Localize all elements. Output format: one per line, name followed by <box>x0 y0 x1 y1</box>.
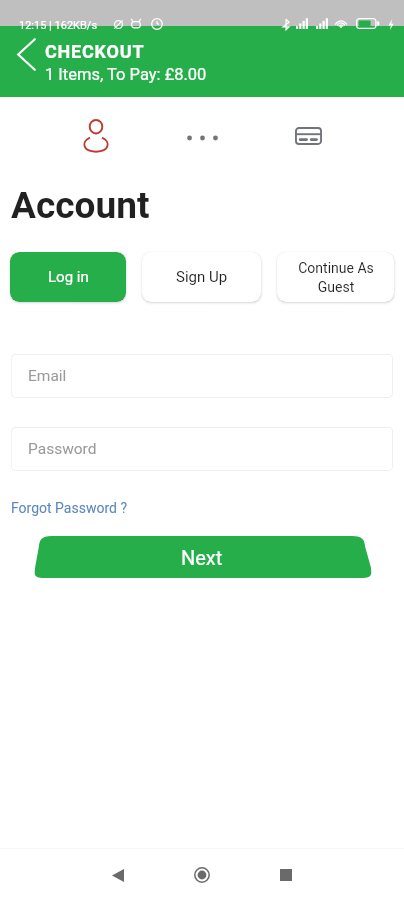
button[interactable]: Payment <box>286 111 330 155</box>
staticText: 1 Items, To Pay: £8.00 <box>45 65 207 84</box>
button[interactable]: Back <box>100 857 136 893</box>
button[interactable]: Delivery <box>180 111 224 155</box>
button[interactable]: Back <box>6 34 46 74</box>
staticText: Next <box>181 546 223 569</box>
button[interactable]: Account <box>74 111 118 155</box>
button[interactable]: Log in <box>10 252 126 302</box>
staticText: Account <box>11 184 150 227</box>
staticText: 12:15 | 162KB/s <box>19 19 98 32</box>
staticText: Log in <box>48 268 89 286</box>
staticText: Sign Up <box>176 268 228 286</box>
button[interactable]: Sign Up <box>142 252 261 302</box>
staticText: CHECKOUT <box>45 41 145 62</box>
button[interactable]: Forgot Password ? <box>11 500 128 516</box>
button[interactable]: Email <box>11 354 393 398</box>
button[interactable]: Home <box>184 857 220 893</box>
staticText: Password <box>28 440 97 458</box>
button[interactable]: Next <box>0 535 404 579</box>
button[interactable]: Password <box>11 427 393 471</box>
button[interactable]: Recents <box>268 857 304 893</box>
staticText: Continue As Guest <box>298 260 374 295</box>
button[interactable]: Continue As Guest <box>277 252 394 302</box>
staticText: Email <box>28 367 67 385</box>
